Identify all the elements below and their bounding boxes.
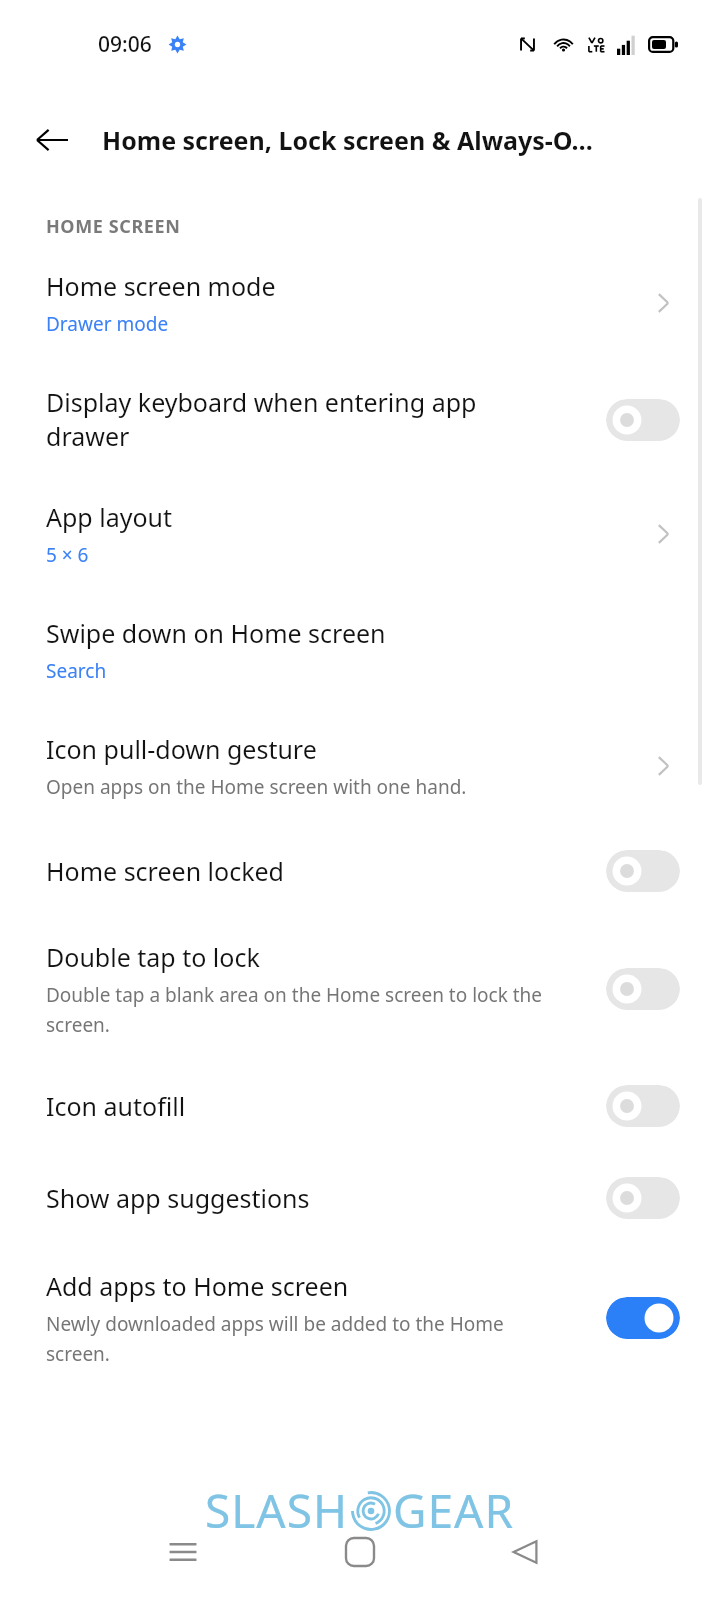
staticText: Open apps on the Home screen with one ha… <box>46 774 467 800</box>
button[interactable]: Show app suggestions <box>0 1153 720 1245</box>
button[interactable]: Home <box>327 1519 393 1585</box>
button[interactable]: Back <box>492 1519 558 1585</box>
staticText: Home screen, Lock screen & Always-O… <box>102 123 593 157</box>
staticText: Home screen mode <box>46 269 276 303</box>
staticText: Home screen locked <box>46 854 284 888</box>
staticText: Display keyboard when entering app drawe… <box>46 385 556 454</box>
button[interactable]: Back <box>24 112 80 168</box>
button[interactable]: Double tap to lock <box>0 918 720 1061</box>
staticText: HOME SCREEN <box>46 214 181 239</box>
button[interactable]: Home screen mode <box>0 239 720 363</box>
staticText: GEAR <box>393 1479 515 1542</box>
staticText: Show app suggestions <box>46 1181 310 1215</box>
staticText: Icon autofill <box>46 1089 186 1123</box>
button[interactable]: Icon pull-down gesture <box>0 710 720 826</box>
staticText: 5 × 6 <box>46 542 89 568</box>
staticText: Double tap a blank area on the Home scre… <box>46 982 546 1037</box>
staticText: Icon pull-down gesture <box>46 732 317 766</box>
button[interactable]: Toggle off <box>606 399 680 441</box>
button[interactable]: Toggle off <box>606 968 680 1010</box>
button[interactable]: Toggle off <box>606 850 680 892</box>
button[interactable]: Home screen locked <box>0 826 720 918</box>
staticText: SLASH <box>205 1479 349 1542</box>
staticText: Swipe down on Home screen <box>46 616 386 650</box>
staticText: 09:06 <box>98 30 152 59</box>
staticText: Double tap to lock <box>46 940 260 974</box>
button[interactable]: Icon autofill <box>0 1061 720 1153</box>
staticText: App layout <box>46 500 173 534</box>
staticText: Newly downloaded apps will be added to t… <box>46 1311 546 1366</box>
button[interactable]: Add apps to Home screen <box>0 1245 720 1376</box>
button[interactable]: Display keyboard when entering app drawe… <box>0 363 720 478</box>
staticText: Add apps to Home screen <box>46 1269 349 1303</box>
button[interactable]: Swipe down on Home screen <box>0 594 720 710</box>
button[interactable]: Recent apps <box>150 1519 216 1585</box>
button[interactable]: Toggle off <box>606 1177 680 1219</box>
staticText: Drawer mode <box>46 311 169 337</box>
staticText: Search <box>46 658 107 684</box>
button[interactable]: App layout <box>0 478 720 594</box>
button[interactable]: Toggle on <box>606 1297 680 1339</box>
button[interactable]: Toggle off <box>606 1085 680 1127</box>
